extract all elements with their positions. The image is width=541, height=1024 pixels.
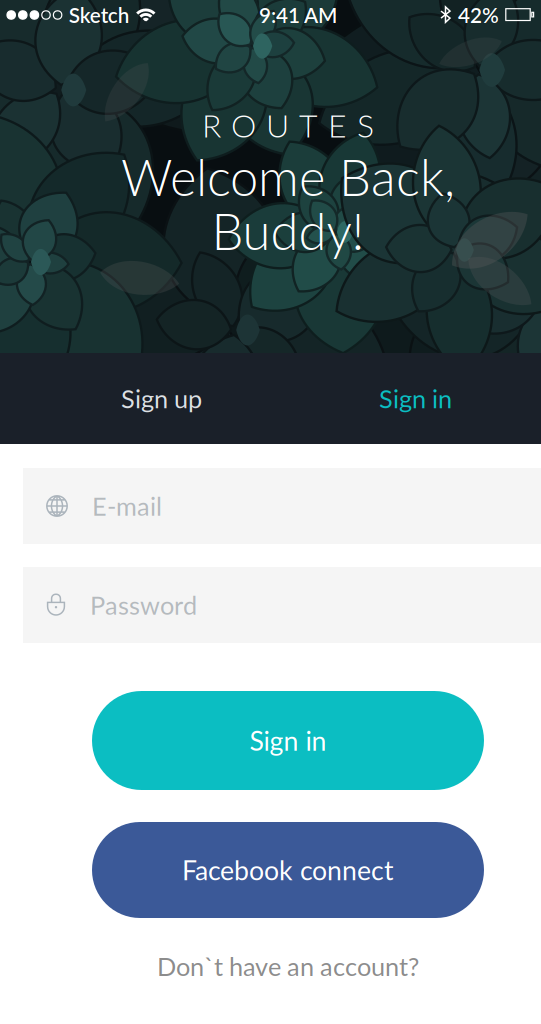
button[interactable]: E-mail bbox=[23, 468, 541, 544]
button[interactable]: Sign in bbox=[92, 691, 484, 790]
staticText: Sketch bbox=[69, 3, 130, 27]
button[interactable]: Sign in bbox=[288, 353, 541, 444]
staticText: ROUTES bbox=[202, 106, 374, 144]
button[interactable]: Sign up bbox=[34, 353, 288, 444]
staticText: Buddy! bbox=[211, 200, 364, 261]
staticText: Don`t have an account? bbox=[157, 951, 419, 981]
staticText: Sign in bbox=[249, 724, 326, 756]
staticText: Facebook connect bbox=[182, 854, 394, 886]
staticText: Password bbox=[90, 590, 197, 620]
button[interactable]: Password bbox=[23, 567, 541, 643]
button[interactable]: Don`t have an account? bbox=[157, 951, 419, 981]
staticText: 42% bbox=[458, 3, 499, 27]
button[interactable]: Facebook connect bbox=[92, 822, 484, 918]
staticText: 9:41 AM bbox=[259, 3, 337, 27]
staticText: Sign in bbox=[379, 383, 452, 414]
staticText: Sign up bbox=[121, 383, 202, 414]
staticText: Welcome Back, bbox=[121, 146, 455, 207]
staticText: E-mail bbox=[92, 491, 162, 521]
